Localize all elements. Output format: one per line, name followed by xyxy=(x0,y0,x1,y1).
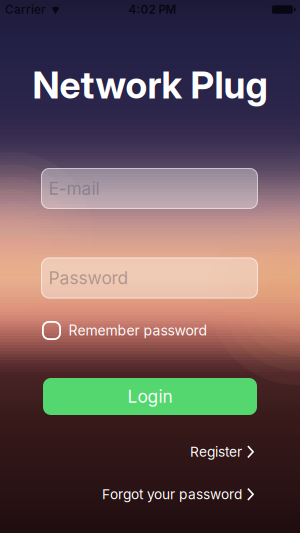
button[interactable]: Register xyxy=(190,443,254,460)
button[interactable]: Login xyxy=(43,378,257,415)
staticText: Forgot your password xyxy=(102,486,242,503)
button[interactable]: Forgot your password xyxy=(102,486,254,503)
staticText: E-mail xyxy=(48,178,99,199)
button[interactable]: Remember password xyxy=(42,321,207,340)
staticText: Network Plug xyxy=(32,62,267,108)
staticText: Register xyxy=(190,443,242,460)
staticText: Remember password xyxy=(68,322,207,339)
button[interactable]: Password xyxy=(41,257,258,298)
staticText: Password xyxy=(48,267,128,288)
button[interactable]: E-mail xyxy=(41,168,258,209)
staticText: Login xyxy=(127,386,172,407)
staticText: 4:02 PM xyxy=(128,2,176,16)
staticText: Carrier xyxy=(5,2,45,16)
